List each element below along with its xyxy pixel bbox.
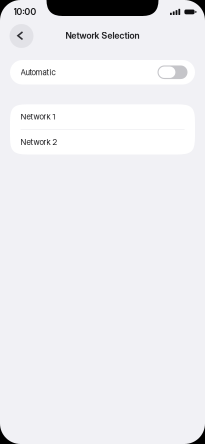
button[interactable]: Network 1 (10, 104, 195, 129)
staticText: Network 1 (21, 112, 56, 121)
staticText: 10:00 (13, 7, 36, 17)
staticText: Automatic (21, 67, 56, 77)
button[interactable]: Automatic (10, 60, 195, 84)
button[interactable]: Network 2 (10, 130, 195, 154)
button[interactable]: Back (9, 24, 33, 48)
staticText: Network Selection (65, 30, 139, 41)
staticText: Network 2 (21, 137, 58, 147)
